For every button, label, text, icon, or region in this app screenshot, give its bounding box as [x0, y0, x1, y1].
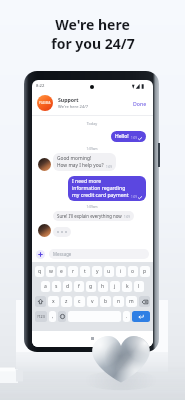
staticText: 1:09am — [38, 205, 146, 209]
staticText: Message — [53, 251, 72, 257]
button[interactable]: v — [87, 296, 98, 307]
staticText: PLASMA — [39, 101, 51, 105]
staticText: q — [38, 268, 42, 275]
staticText: my credit card payment — [72, 192, 129, 199]
button[interactable]: o — [128, 266, 138, 277]
button[interactable]: x — [48, 296, 59, 307]
staticText: Today — [38, 121, 146, 126]
staticText: I need more — [72, 178, 102, 185]
button[interactable]: a — [41, 281, 50, 292]
button[interactable]: n — [113, 296, 124, 307]
button[interactable]: j — [110, 281, 120, 292]
staticText: p — [143, 268, 147, 275]
staticText: h — [101, 283, 105, 290]
staticText: g — [89, 283, 93, 290]
staticText: e — [60, 268, 63, 275]
staticText: . — [126, 313, 128, 320]
staticText: w — [49, 268, 53, 275]
staticText: j — [114, 283, 116, 290]
button[interactable]: Symbols — [35, 311, 47, 322]
button[interactable]: Shift — [35, 296, 46, 307]
staticText: 1:09 — [131, 136, 137, 140]
staticText: t — [84, 268, 86, 275]
button[interactable]: s — [52, 281, 61, 292]
button[interactable]: g — [86, 281, 96, 292]
staticText: Sure! I'll explain everything now — [57, 213, 122, 219]
button[interactable]: Send — [132, 311, 150, 322]
staticText: o — [131, 268, 135, 275]
button[interactable]: z — [61, 296, 72, 307]
staticText: Support — [58, 96, 79, 103]
staticText: v — [91, 298, 94, 305]
staticText: Hello! — [115, 133, 129, 140]
staticText: , — [52, 313, 54, 320]
button[interactable]: Backspace — [139, 296, 150, 307]
staticText: ?123 — [37, 314, 45, 319]
staticText: for you 24/7 — [51, 34, 135, 53]
staticText: k — [126, 283, 129, 290]
staticText: s — [55, 283, 58, 290]
button[interactable]: Good morning! — [53, 153, 116, 171]
button[interactable]: c — [74, 296, 85, 307]
staticText: Good morning! — [57, 155, 92, 162]
staticText: l — [138, 283, 140, 290]
button[interactable]: h — [98, 281, 108, 292]
staticText: information regarding — [72, 185, 126, 192]
button[interactable]: k — [122, 281, 132, 292]
button[interactable]: Hello! — [111, 131, 146, 142]
button[interactable]: , — [49, 311, 56, 322]
staticText: We're here 24/7 — [58, 104, 89, 110]
button[interactable]: Plasma support avatar — [37, 95, 53, 111]
staticText: a — [44, 283, 47, 290]
staticText: 1:09 — [131, 195, 137, 199]
staticText: n — [117, 298, 121, 305]
staticText: u — [107, 268, 111, 275]
staticText: r — [72, 268, 75, 275]
button[interactable]: y — [92, 266, 102, 277]
button[interactable]: u — [104, 266, 114, 277]
staticText: 1:09 — [124, 215, 130, 219]
staticText: b — [104, 298, 108, 305]
button[interactable]: Sure! I'll explain everything now — [53, 211, 134, 221]
staticText: Done — [133, 100, 147, 107]
button[interactable]: b — [100, 296, 111, 307]
staticText: How may I help you? — [57, 162, 104, 169]
button[interactable]: I need more — [68, 176, 146, 201]
staticText: z — [65, 298, 68, 305]
button[interactable]: t — [80, 266, 90, 277]
button[interactable]: r — [68, 266, 78, 277]
staticText: y — [96, 268, 99, 275]
staticText: 1:09 — [106, 165, 112, 169]
button[interactable]: l — [134, 281, 144, 292]
button[interactable]: Done — [132, 97, 148, 110]
staticText: 8:22 — [36, 83, 45, 89]
button[interactable]: q — [35, 266, 44, 277]
staticText: d — [66, 283, 70, 290]
button[interactable]: e — [57, 266, 66, 277]
staticText: m — [129, 298, 134, 305]
staticText: We're here — [55, 15, 130, 34]
button[interactable]: Add attachment — [36, 250, 45, 259]
staticText: c — [78, 298, 81, 305]
staticText: x — [52, 298, 55, 305]
staticText: 1:09am — [38, 147, 146, 151]
staticText: i — [120, 268, 122, 275]
button[interactable]: d — [63, 281, 72, 292]
button[interactable]: m — [126, 296, 137, 307]
button[interactable]: . — [123, 311, 130, 322]
button[interactable]: Emoji — [58, 311, 66, 322]
button[interactable]: i — [116, 266, 126, 277]
staticText: f — [78, 283, 80, 290]
button[interactable]: f — [74, 281, 84, 292]
button[interactable]: Message — [49, 249, 149, 259]
button[interactable]: p — [140, 266, 150, 277]
button[interactable]: w — [46, 266, 55, 277]
